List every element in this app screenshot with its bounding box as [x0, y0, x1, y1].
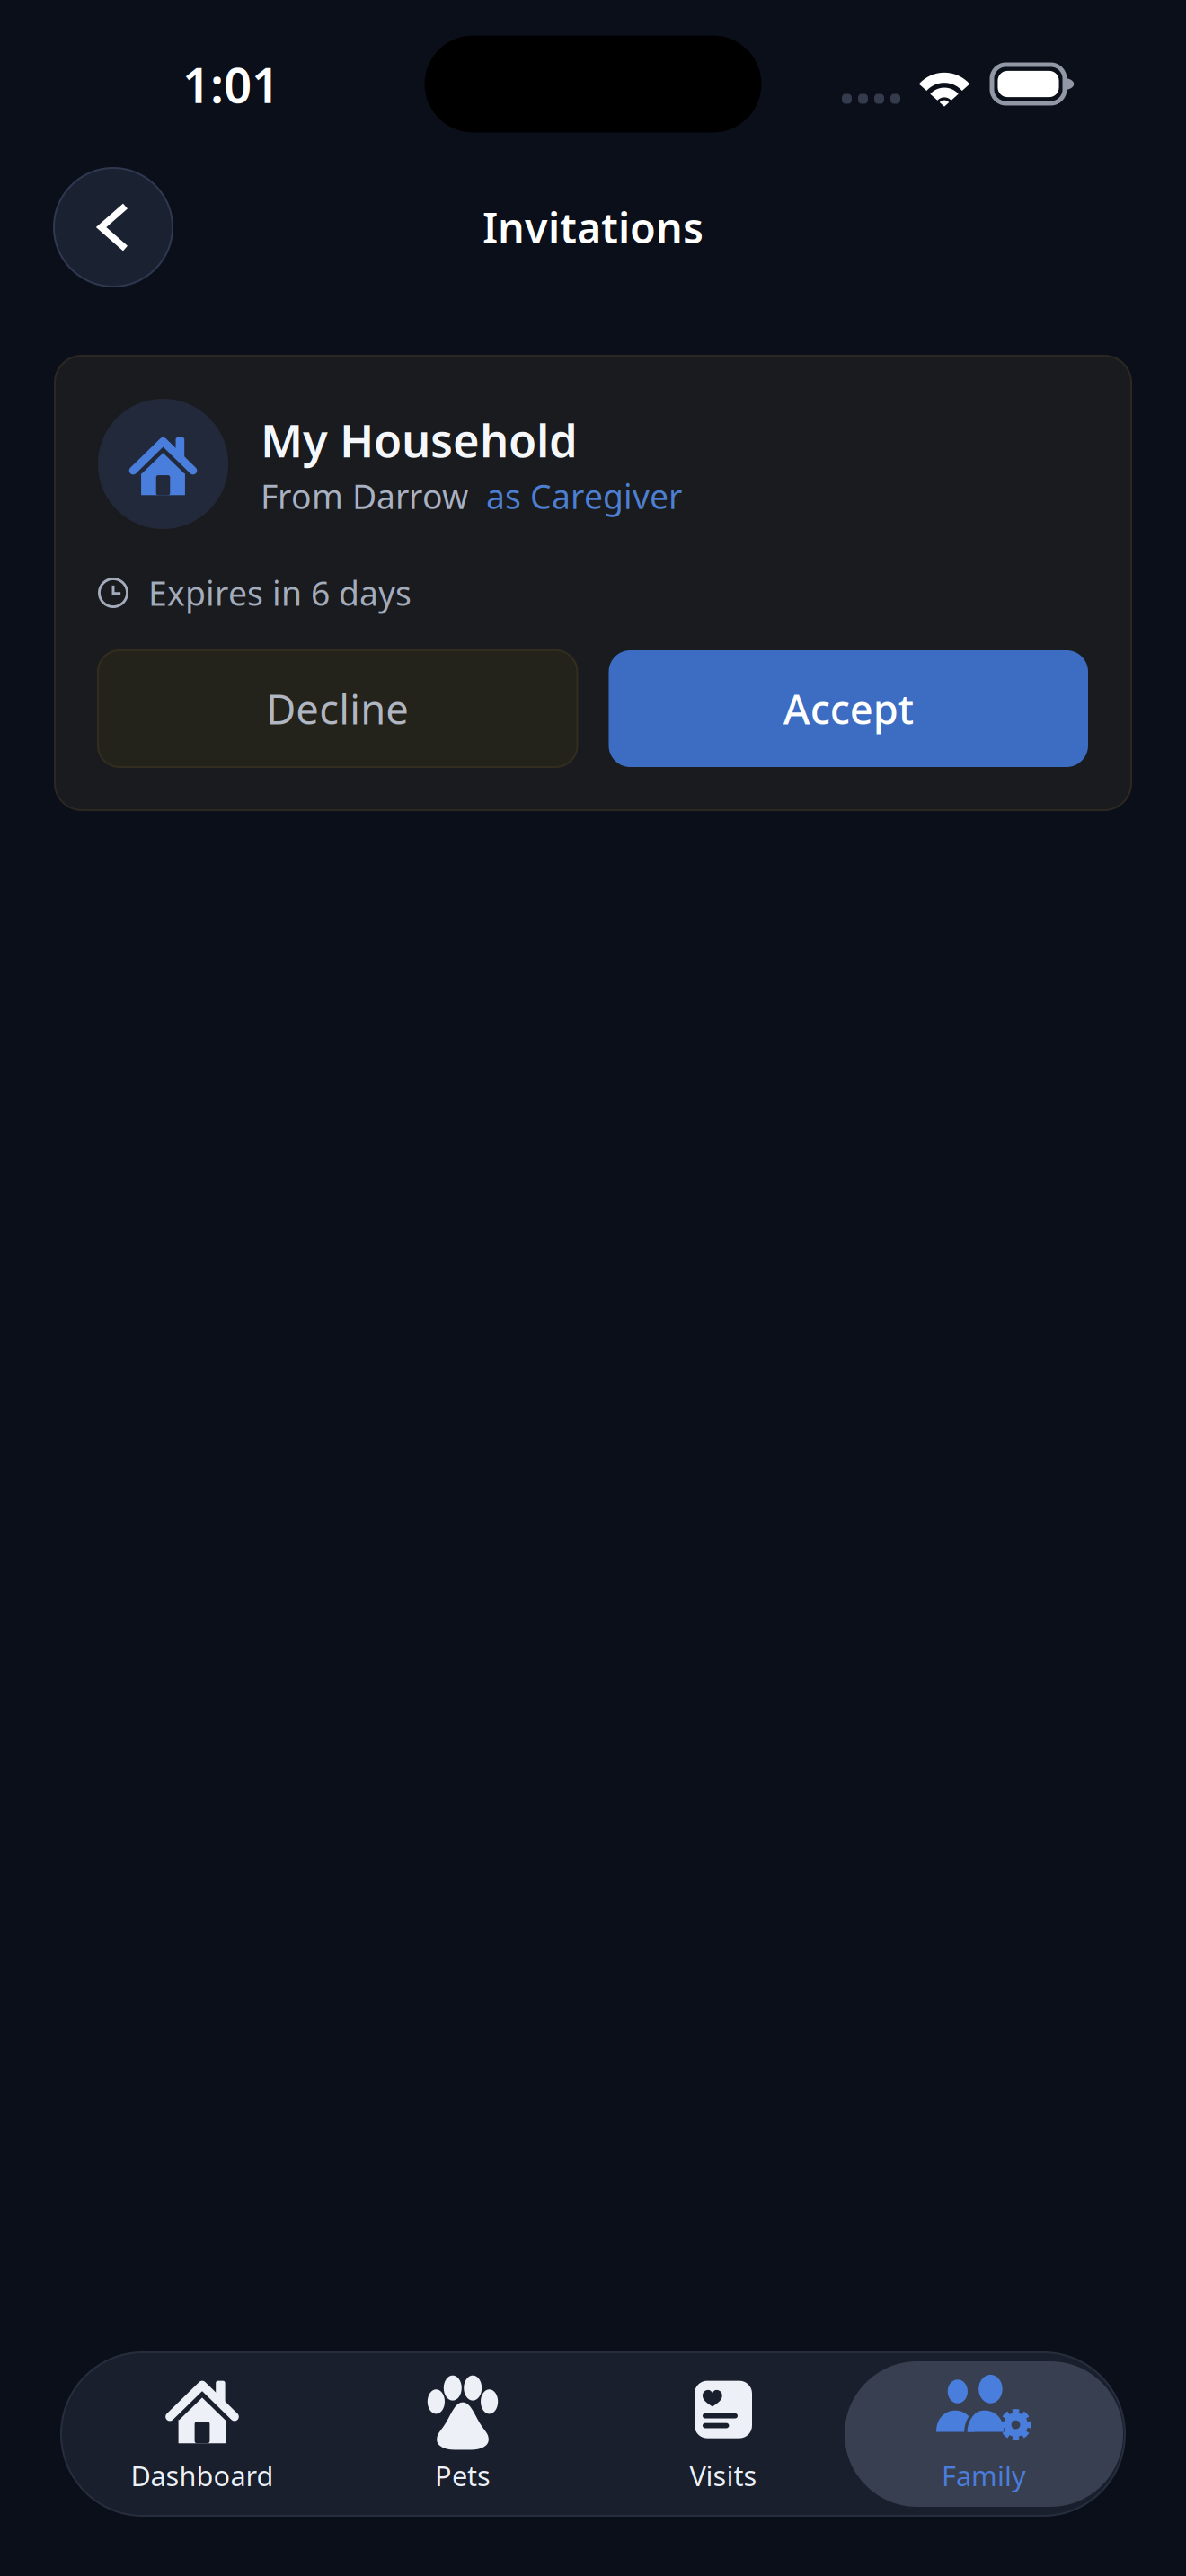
staticText: Invitations [482, 199, 704, 255]
staticText: My Household [261, 410, 578, 470]
staticText: Pets [435, 2457, 491, 2494]
staticText: Family [942, 2457, 1026, 2494]
staticText: Accept [783, 682, 914, 736]
button[interactable]: Accept [609, 650, 1088, 767]
staticText: Expires in 6 days [148, 571, 412, 615]
button[interactable]: Family [854, 2361, 1114, 2507]
button[interactable]: Visits [593, 2361, 854, 2507]
staticText: Visits [690, 2457, 757, 2494]
staticText: Decline [266, 682, 409, 736]
staticText: as Caregiver [468, 474, 682, 518]
button[interactable]: Back [54, 168, 173, 287]
button[interactable]: Dashboard [72, 2361, 332, 2507]
staticText: From Darrow [261, 474, 468, 518]
button[interactable]: Decline [98, 650, 577, 767]
staticText: 1:01 [182, 51, 279, 117]
staticText: Dashboard [131, 2457, 274, 2494]
button[interactable]: Pets [332, 2361, 593, 2507]
